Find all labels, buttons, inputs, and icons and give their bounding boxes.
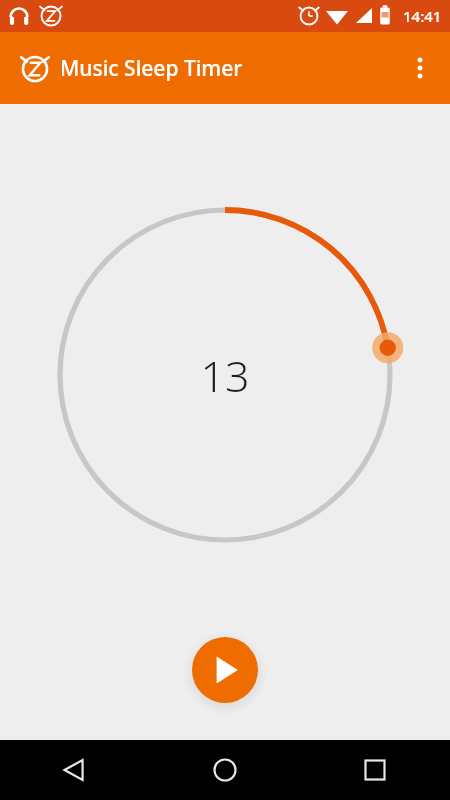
button[interactable]: Start timer: [185, 630, 265, 710]
staticText: Music Sleep Timer: [60, 54, 243, 83]
button[interactable]: Timer duration dial, 13 minutes: [0, 104, 450, 740]
staticText: 14:41: [403, 6, 442, 26]
button[interactable]: More options: [396, 44, 444, 92]
button[interactable]: Recent apps: [300, 740, 450, 800]
button[interactable]: Back: [0, 740, 150, 800]
button[interactable]: Home: [150, 740, 300, 800]
staticText: 13: [200, 346, 250, 405]
